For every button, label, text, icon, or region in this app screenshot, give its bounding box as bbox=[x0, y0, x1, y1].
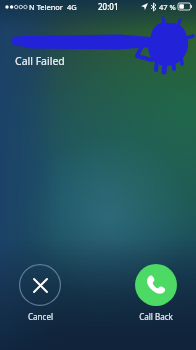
button[interactable]: Cancel bbox=[11, 264, 69, 322]
staticText: Cancel bbox=[28, 311, 53, 322]
staticText: 20:01 bbox=[98, 1, 119, 12]
button[interactable]: Call Back bbox=[127, 264, 185, 322]
staticText: Call Back bbox=[139, 311, 173, 322]
staticText: 47 % bbox=[159, 2, 176, 12]
staticText: 4G bbox=[67, 2, 77, 12]
staticText: N Telenor bbox=[29, 2, 63, 12]
staticText: Call Failed bbox=[15, 54, 65, 68]
